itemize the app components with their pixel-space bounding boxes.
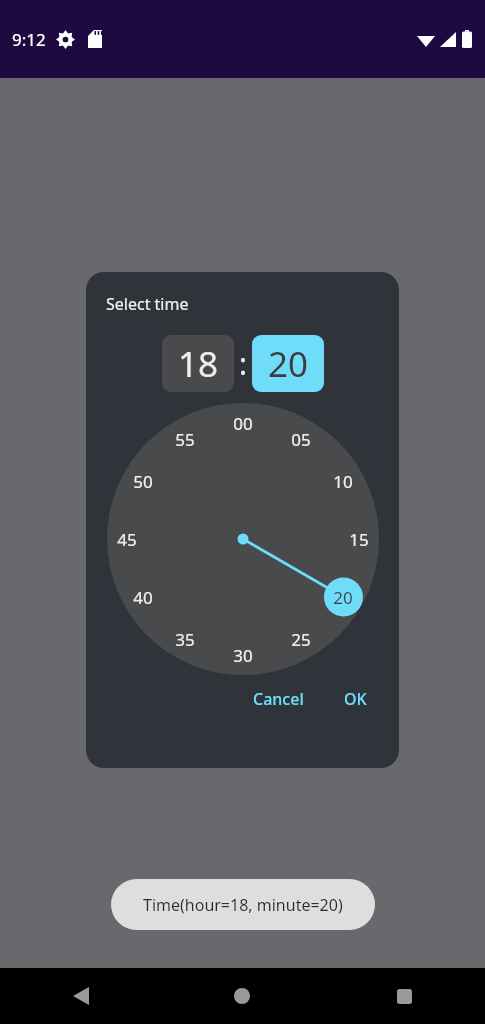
staticText: 50 — [133, 470, 153, 493]
staticText: 20 — [268, 340, 309, 388]
staticText: Time(hour=18, minute=20) — [143, 894, 343, 916]
button[interactable]: Recent apps — [380, 972, 428, 1020]
button[interactable]: Cancel — [239, 677, 318, 721]
staticText: 20 — [333, 586, 353, 609]
staticText: 18 — [178, 340, 219, 388]
button[interactable]: Home — [218, 972, 266, 1020]
staticText: 45 — [117, 528, 137, 551]
button[interactable]: 20 — [252, 335, 324, 392]
staticText: 35 — [175, 628, 195, 651]
staticText: 55 — [175, 428, 195, 451]
staticText: Select time — [106, 293, 189, 315]
staticText: 9:12 — [12, 28, 46, 51]
staticText: 05 — [291, 428, 311, 451]
staticText: 30 — [233, 644, 253, 667]
staticText: 00 — [233, 412, 253, 435]
button[interactable]: Minute clock dial — [107, 403, 379, 675]
staticText: : — [239, 343, 248, 384]
staticText: Cancel — [253, 688, 304, 710]
staticText: 15 — [349, 528, 369, 551]
button[interactable]: Back — [57, 972, 105, 1020]
staticText: 10 — [333, 470, 353, 493]
button[interactable]: OK — [330, 677, 381, 721]
button[interactable]: 18 — [162, 335, 234, 392]
staticText: OK — [344, 688, 367, 710]
staticText: 25 — [291, 628, 311, 651]
staticText: 40 — [133, 586, 153, 609]
